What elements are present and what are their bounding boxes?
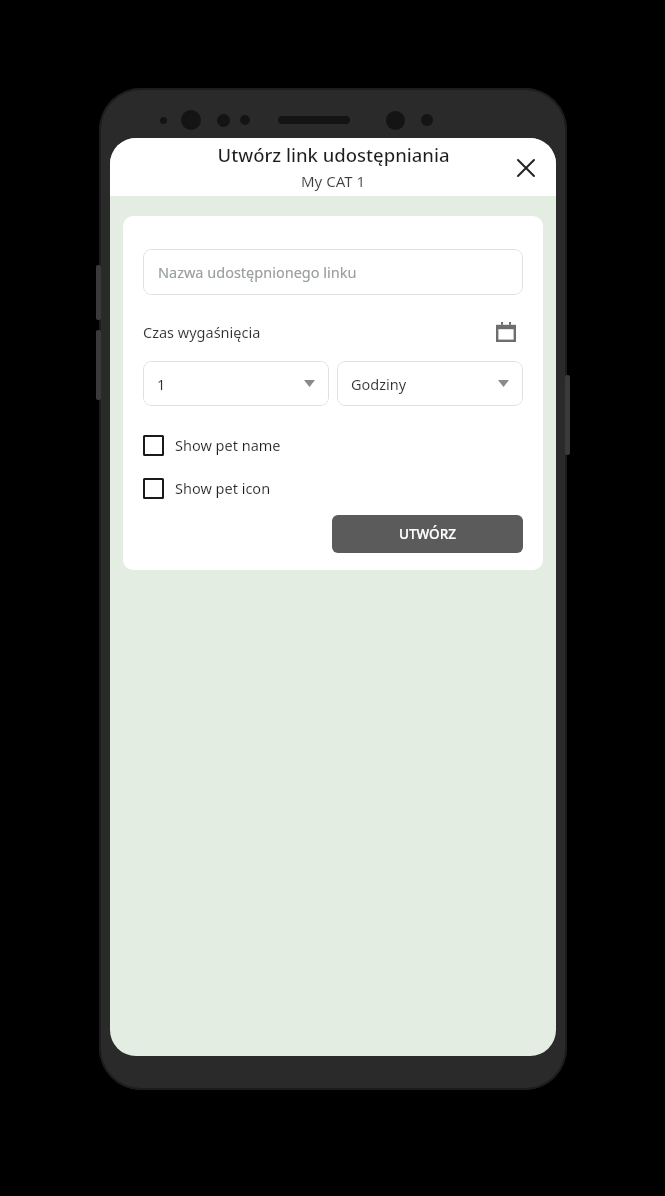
button[interactable]: Godziny — [337, 361, 523, 406]
staticText: Godziny — [351, 374, 407, 394]
staticText: Show pet icon — [175, 478, 271, 498]
staticText: Czas wygaśnięcia — [143, 322, 261, 342]
other: Power — [565, 375, 570, 455]
staticText: My CAT 1 — [301, 171, 365, 191]
staticText: 1 — [157, 374, 166, 394]
staticText: UTWÓRZ — [399, 525, 456, 543]
button[interactable]: UTWÓRZ — [332, 515, 523, 553]
staticText: Nazwa udostępnionego linku — [158, 262, 357, 282]
button[interactable]: Pick date — [489, 315, 523, 349]
button[interactable]: Close — [506, 148, 546, 188]
other: Volume down — [96, 330, 101, 400]
button[interactable]: Nazwa udostępnionego linku — [143, 249, 523, 295]
staticText: Show pet name — [175, 435, 281, 455]
other: Volume up — [96, 265, 101, 320]
button[interactable]: Show pet icon — [143, 475, 523, 501]
button[interactable]: 1 — [143, 361, 329, 406]
staticText: Utwórz link udostępniania — [217, 142, 450, 167]
button[interactable]: Show pet name — [143, 432, 523, 458]
